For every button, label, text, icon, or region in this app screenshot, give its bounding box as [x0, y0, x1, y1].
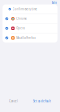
- button[interactable]: Edit: [52, 0, 60, 5]
- button[interactable]: Set as default: [33, 99, 51, 103]
- button[interactable]: Cancel: [9, 99, 18, 103]
- staticText: Mozilla Firefox: [16, 36, 35, 40]
- staticText: Opera: [16, 27, 24, 30]
- button[interactable]: Confirm every time: [2, 4, 57, 14]
- staticText: Set as default: [33, 99, 51, 103]
- staticText: Cancel: [9, 99, 18, 103]
- staticText: Edit: [52, 1, 57, 5]
- staticText: Chrome: [16, 17, 27, 20]
- button[interactable]: Chrome: [2, 14, 57, 23]
- staticText: Confirm every time: [13, 7, 38, 11]
- button[interactable]: Opera: [2, 24, 57, 33]
- button[interactable]: Mozilla Firefox: [2, 33, 57, 42]
